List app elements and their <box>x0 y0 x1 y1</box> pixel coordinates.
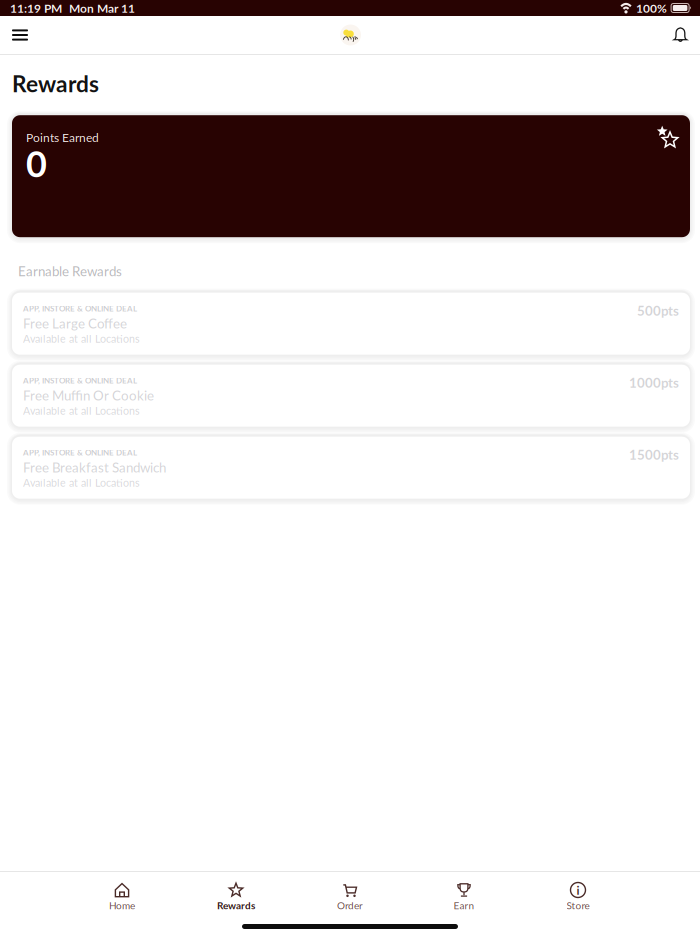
staticText: 0 <box>26 142 47 185</box>
button[interactable]: i <box>521 878 635 916</box>
button[interactable]: APP, INSTORE & ONLINE DEAL <box>7 433 695 505</box>
staticText: APP, INSTORE & ONLINE DEAL <box>23 304 137 313</box>
staticText: Rewards <box>217 899 255 911</box>
button[interactable]: Home <box>65 878 179 916</box>
staticText: i <box>576 883 579 897</box>
staticText: Points Earned <box>26 130 99 145</box>
staticText: 1500pts <box>629 447 679 463</box>
staticText: Mon Mar 11 <box>69 1 135 15</box>
staticText: 11:19 PM <box>10 1 62 15</box>
staticText: 500pts <box>637 303 679 319</box>
button[interactable]: Notifications <box>661 16 700 54</box>
staticText: Home <box>109 899 135 911</box>
staticText: Order <box>337 899 363 911</box>
staticText: Free Large Coffee <box>23 315 127 331</box>
staticText: Store <box>566 899 589 911</box>
staticText: Rewards <box>12 70 99 97</box>
staticText: Available at all Locations <box>23 404 140 417</box>
button[interactable]: APP, INSTORE & ONLINE DEAL <box>7 361 695 433</box>
staticText: 1000pts <box>629 375 679 391</box>
button[interactable]: Earn <box>407 878 521 916</box>
staticText: Available at all Locations <box>23 476 140 489</box>
button[interactable]: Order <box>293 878 407 916</box>
staticText: 100% <box>636 1 667 15</box>
button[interactable]: Rewards <box>179 878 293 916</box>
button[interactable]: Menu <box>0 16 40 54</box>
staticText: Free Breakfast Sandwich <box>23 459 166 475</box>
staticText: APP, INSTORE & ONLINE DEAL <box>23 448 137 457</box>
staticText: Free Muffin Or Cookie <box>23 387 154 403</box>
staticText: APP, INSTORE & ONLINE DEAL <box>23 376 137 385</box>
staticText: Earn <box>453 899 474 911</box>
staticText: Available at all Locations <box>23 332 140 345</box>
button[interactable]: APP, INSTORE & ONLINE DEAL <box>7 289 695 361</box>
staticText: Earnable Rewards <box>18 263 122 279</box>
